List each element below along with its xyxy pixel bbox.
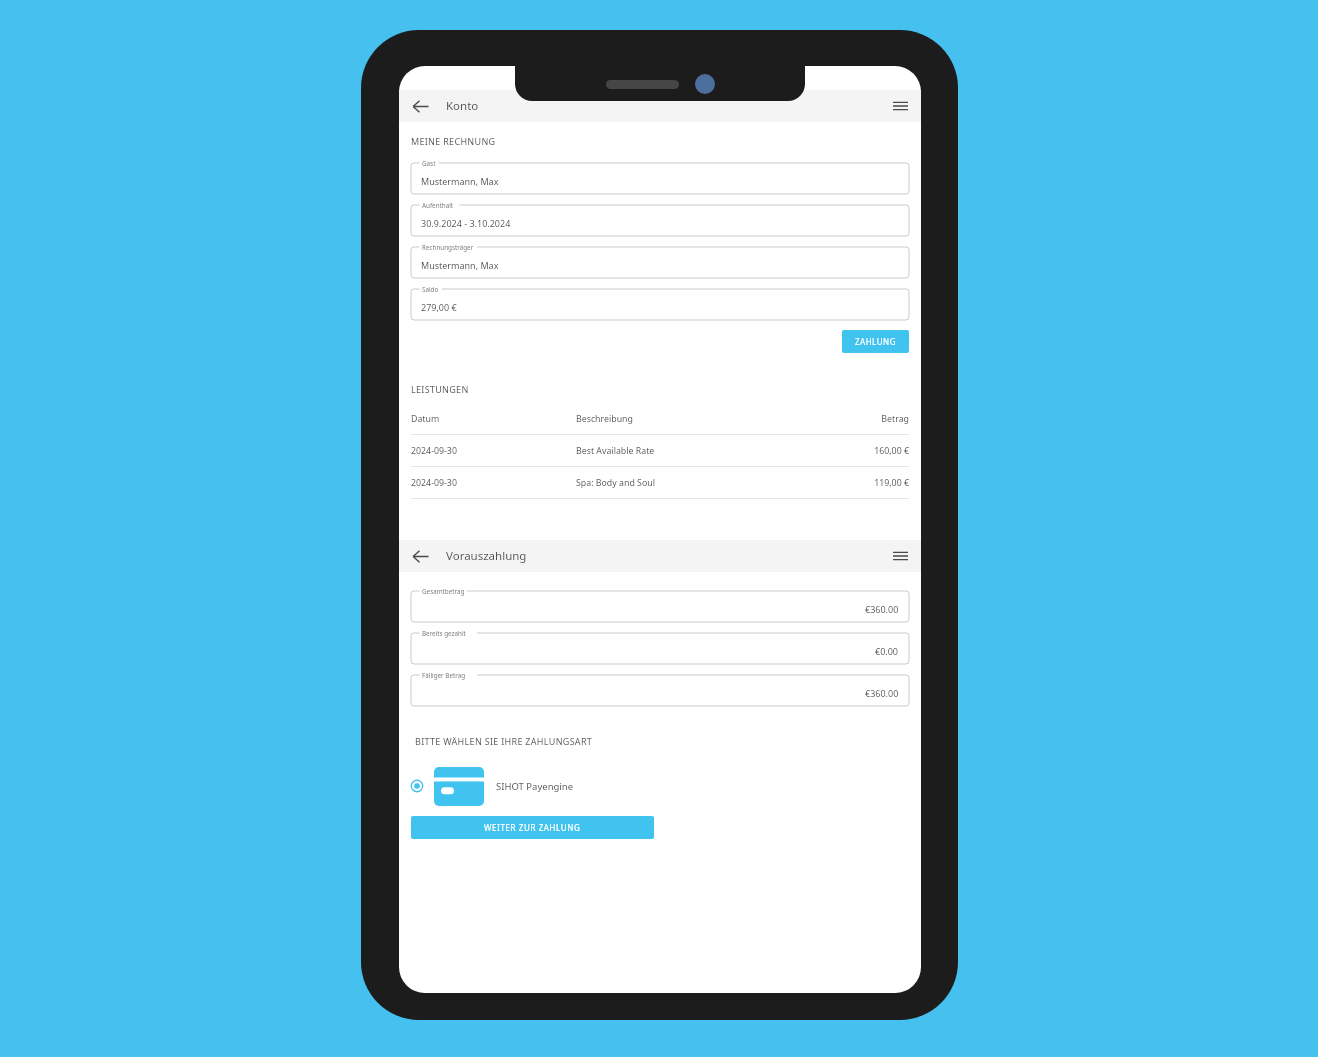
button[interactable]: SIHOT Payengine [410,765,921,807]
staticText: Datum [411,413,576,425]
staticText: Spa: Body and Soul [576,477,819,489]
staticText: €360.00 [865,603,899,615]
staticText: Mustermann, Max [421,259,499,271]
staticText: Fälliger Betrag [422,671,466,680]
staticText: Mustermann, Max [421,175,499,187]
staticText: Aufenthalt [422,201,454,210]
staticText: €0.00 [875,645,899,657]
other: Menu [893,550,908,562]
staticText: Bereits gezahlt [422,629,466,638]
staticText: €360.00 [865,687,899,699]
staticText: LEISTUNGEN [411,383,469,395]
staticText: ZAHLUNG [855,336,896,347]
staticText: Beschreibung [576,413,819,425]
staticText: SIHOT Payengine [496,780,574,793]
staticText: Betrag [819,413,909,425]
staticText: 160,00 € [819,445,909,457]
staticText: Rechnungsträger [422,243,474,252]
staticText: Best Available Rate [576,445,819,457]
staticText: Vorauszahlung [446,548,527,564]
staticText: BITTE WÄHLEN SIE IHRE ZAHLUNGSART [415,735,593,747]
staticText: 2024-09-30 [411,477,576,489]
staticText: WEITER ZUR ZAHLUNG [484,822,581,833]
staticText: Gast [422,159,436,168]
staticText: 279,00 € [421,301,457,313]
staticText: 2024-09-30 [411,445,576,457]
button[interactable]: Menu [888,94,912,118]
staticText: MEINE RECHNUNG [411,135,496,147]
staticText: Gesamtbetrag [422,587,465,596]
staticText: Konto [446,98,479,114]
staticText: 119,00 € [819,477,909,489]
staticText: Saldo [422,285,439,294]
staticText: 30.9.2024 - 3.10.2024 [421,217,511,229]
button[interactable]: Back [408,94,432,118]
button[interactable]: ZAHLUNG [842,330,909,353]
button[interactable]: WEITER ZUR ZAHLUNG [411,816,654,839]
button[interactable]: Back [408,544,432,568]
other: Back [412,98,429,115]
button[interactable]: Menu [888,544,912,568]
other: Back [412,548,429,565]
other: Menu [893,100,908,112]
